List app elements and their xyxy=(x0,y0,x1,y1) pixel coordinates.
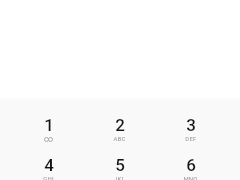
staticText: ABC xyxy=(113,135,126,142)
button[interactable]: 4 xyxy=(13,153,84,180)
button[interactable]: 3 xyxy=(155,113,226,153)
staticText: 2 xyxy=(115,115,125,135)
staticText: DEF xyxy=(185,135,197,142)
staticText: 1 xyxy=(44,115,54,135)
staticText: GHI xyxy=(43,175,54,180)
staticText: MNO xyxy=(183,175,198,180)
staticText: JKL xyxy=(114,175,125,180)
staticText: 4 xyxy=(44,155,54,175)
staticText: 6 xyxy=(186,155,196,175)
staticText: 3 xyxy=(186,115,196,135)
button[interactable]: 6 xyxy=(155,153,226,180)
button[interactable]: 2 xyxy=(84,113,155,153)
button[interactable]: Voicemail, one xyxy=(13,113,84,153)
button[interactable]: 5 xyxy=(84,153,155,180)
staticText: 5 xyxy=(115,155,125,175)
